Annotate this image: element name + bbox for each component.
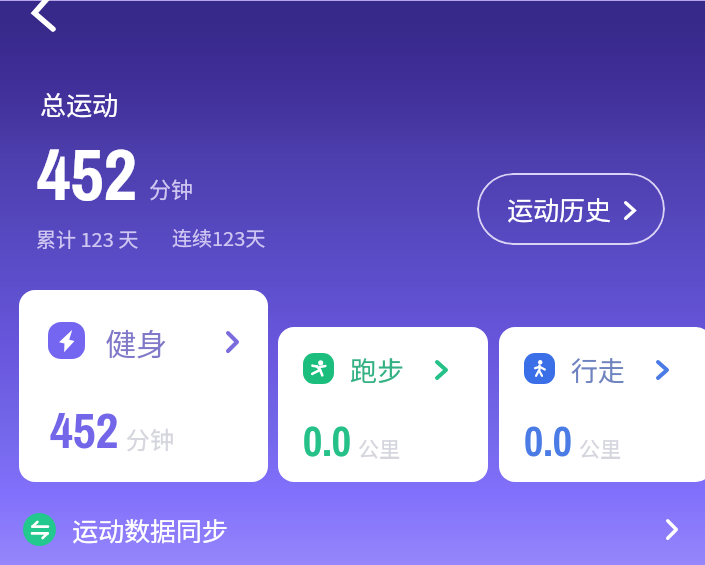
button[interactable]: Back bbox=[20, 0, 68, 34]
staticText: 运动历史 bbox=[507, 190, 612, 228]
staticText: 452 bbox=[37, 124, 137, 222]
staticText: 公里 bbox=[358, 433, 400, 463]
button[interactable]: 跑步 bbox=[278, 327, 488, 482]
staticText: 行走 bbox=[571, 350, 625, 389]
staticText: 跑步 bbox=[350, 350, 404, 389]
staticText: 健身 bbox=[105, 320, 167, 365]
staticText: 总运动 bbox=[40, 85, 119, 123]
button[interactable]: 行走 bbox=[499, 327, 705, 482]
button[interactable]: 运动数据同步 bbox=[0, 496, 705, 563]
staticText: 452 bbox=[50, 396, 119, 463]
staticText: 分钟 bbox=[149, 172, 194, 204]
staticText: 连续123天 bbox=[172, 223, 266, 252]
button[interactable]: 运动历史 bbox=[477, 173, 665, 245]
button[interactable]: 健身 bbox=[19, 290, 268, 482]
staticText: 0.0 bbox=[524, 413, 572, 470]
staticText: 公里 bbox=[579, 433, 621, 463]
staticText: 运动数据同步 bbox=[72, 511, 229, 549]
staticText: 累计 123 天 bbox=[36, 224, 139, 253]
staticText: 分钟 bbox=[126, 421, 174, 456]
staticText: 0.0 bbox=[303, 413, 351, 470]
